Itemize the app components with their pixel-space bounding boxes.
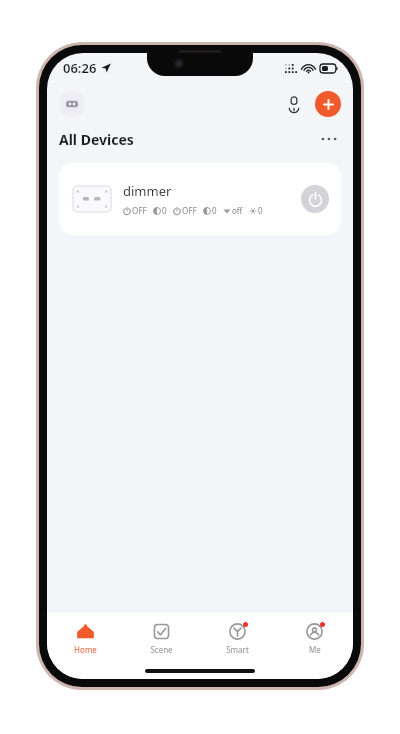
button[interactable]: More options: [317, 129, 341, 149]
button[interactable]: Scene: [123, 613, 199, 663]
button[interactable]: Home selector: [59, 91, 85, 117]
button[interactable]: Me: [276, 613, 353, 663]
staticText: Smart: [226, 644, 249, 655]
staticText: Home: [74, 644, 97, 655]
button[interactable]: dimmer: [59, 163, 341, 235]
staticText: 06:26: [63, 59, 97, 77]
button[interactable]: Smart: [199, 613, 276, 663]
staticText: OFF: [132, 205, 147, 216]
staticText: dimmer: [123, 182, 172, 200]
staticText: Scene: [150, 644, 173, 655]
button[interactable]: Power toggle: [301, 185, 329, 213]
staticText: off: [232, 205, 243, 216]
staticText: 0: [212, 205, 217, 216]
button[interactable]: Voice control: [279, 89, 309, 119]
button[interactable]: Add device: [315, 91, 341, 117]
staticText: All Devices: [59, 130, 134, 149]
staticText: 0: [162, 205, 167, 216]
button[interactable]: Home: [47, 613, 123, 663]
staticText: 0: [258, 205, 263, 216]
staticText: OFF: [182, 205, 197, 216]
staticText: Me: [309, 644, 321, 655]
